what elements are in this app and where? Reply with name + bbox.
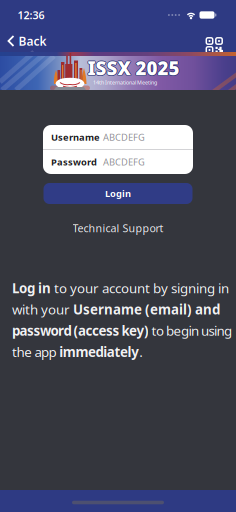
staticText: to your account by signing in (51, 279, 229, 297)
staticText: Username (email) and (73, 300, 220, 318)
staticText: to begin using (149, 322, 232, 339)
staticText: with your (12, 300, 73, 318)
button[interactable] (206, 37, 223, 53)
staticText: Technical Support (72, 221, 163, 235)
button[interactable]: Password (43, 150, 193, 174)
staticText: Back (18, 33, 46, 49)
staticText: ISSX 2025 (87, 55, 179, 80)
staticText: ISSX 2025 (87, 56, 179, 80)
staticText: password (access key) (12, 322, 149, 339)
button[interactable]: Back (7, 33, 46, 49)
staticText: . (139, 343, 143, 361)
staticText: ISSX 2025 (87, 56, 179, 80)
staticText: Password (51, 156, 97, 168)
staticText: ABCDEFG (103, 131, 145, 143)
button[interactable]: Login (43, 183, 192, 204)
staticText: 14th International Meeting (93, 79, 157, 86)
button[interactable]: Technical Support (72, 221, 163, 235)
staticText: Username (51, 131, 100, 143)
staticText: immediately (59, 343, 139, 361)
button[interactable]: Username (43, 125, 193, 149)
staticText: ISSX 2025 (88, 56, 180, 80)
staticText: ISSX 2025 (87, 56, 179, 81)
staticText: Login (105, 187, 131, 200)
staticText: ABCDEFG (103, 156, 145, 168)
staticText: the app (12, 343, 59, 361)
staticText: Log in (12, 279, 51, 297)
staticText: 12:36 (17, 8, 44, 22)
